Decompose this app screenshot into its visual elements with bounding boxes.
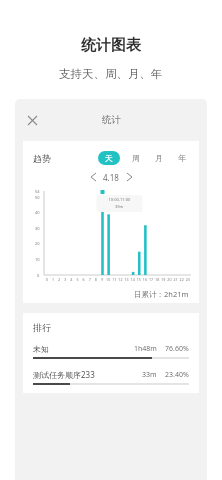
button[interactable]: 测试任务顺序233 xyxy=(33,369,189,385)
staticText: 周 xyxy=(132,153,140,163)
button[interactable]: Previous day xyxy=(87,171,99,183)
staticText: 未知 xyxy=(33,344,49,354)
staticText: 4.18 xyxy=(103,172,119,183)
button[interactable]: Next day xyxy=(123,171,135,183)
button[interactable]: Close xyxy=(23,111,41,129)
staticText: 统计图表 xyxy=(81,36,141,55)
staticText: 33m xyxy=(142,370,157,380)
button[interactable]: 未知 xyxy=(33,344,189,359)
staticText: 趋势 xyxy=(33,153,51,164)
staticText: 76.60% xyxy=(165,344,189,354)
staticText: 天 xyxy=(105,153,113,163)
staticText: 支持天、周、月、年 xyxy=(59,67,163,81)
button[interactable]: 周 xyxy=(131,151,141,165)
staticText: 月 xyxy=(155,153,163,163)
staticText: 测试任务顺序233 xyxy=(33,369,95,380)
staticText: 日累计：2h21m xyxy=(134,289,189,299)
staticText: 23.40% xyxy=(165,370,189,380)
button[interactable]: 月 xyxy=(154,151,164,165)
staticText: 1h48m xyxy=(134,344,157,354)
button[interactable]: 天 xyxy=(98,151,120,165)
staticText: 年 xyxy=(178,153,186,163)
staticText: 排行 xyxy=(33,322,51,333)
staticText: 统计 xyxy=(102,114,121,126)
button[interactable]: 年 xyxy=(177,151,187,165)
